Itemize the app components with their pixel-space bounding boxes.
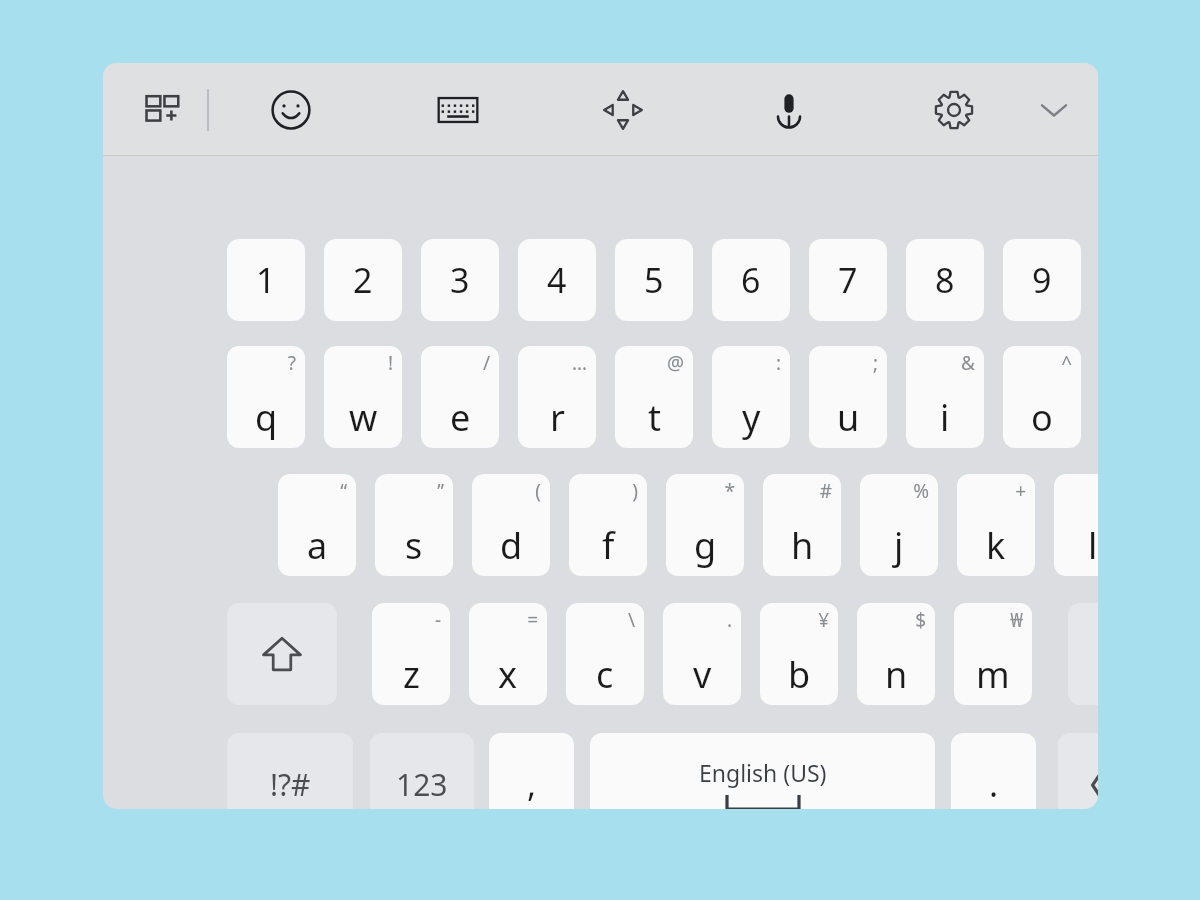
staticText: + [1015,478,1026,504]
button[interactable]: 1 [227,239,305,321]
button[interactable]: ₩ [954,603,1032,705]
button[interactable]: Settings [921,77,987,143]
staticText: % [913,478,929,504]
button[interactable]: Emoji [258,77,324,143]
staticText: h [791,521,814,570]
button[interactable]: 6 [712,239,790,321]
staticText: c [596,650,614,699]
button[interactable]: $ [857,603,935,705]
button[interactable]: 8 [906,239,984,321]
button[interactable]: 7 [809,239,887,321]
button[interactable]: ” [375,474,453,576]
button[interactable]: Shift [227,603,337,705]
staticText: ( [535,478,541,504]
button[interactable]: & [906,346,984,448]
staticText: r [550,393,565,442]
staticText: @ [666,350,684,376]
staticText: * [724,478,735,504]
staticText: \ [627,607,635,633]
button[interactable]: # [763,474,841,576]
staticText: g [694,521,717,570]
staticText: 4 [547,257,567,303]
staticText: # [819,478,832,504]
button[interactable]: ? [227,346,305,448]
button[interactable]: \ [566,603,644,705]
button[interactable]: Hide keyboard [1021,77,1087,143]
button[interactable]: * [666,474,744,576]
staticText: ₩ [1010,607,1023,633]
staticText: 5 [644,257,664,303]
staticText: - [434,607,441,633]
button[interactable]: - [1054,474,1098,576]
button[interactable]: @ [615,346,693,448]
button[interactable]: Space [590,733,935,809]
staticText: ” [437,478,444,504]
staticText: l [1088,521,1098,570]
staticText: !?# [270,764,311,805]
staticText: . [989,761,999,807]
staticText: ! [387,350,393,376]
staticText: “ [340,478,347,504]
staticText: English (US) [699,757,827,788]
staticText: 2 [353,257,373,303]
button[interactable]: !?# [227,733,353,809]
button[interactable]: ! [324,346,402,448]
button[interactable]: , [489,733,574,809]
button[interactable]: ¥ [760,603,838,705]
staticText: z [403,650,420,699]
staticText: = [527,607,538,633]
staticText: 8 [935,257,955,303]
button[interactable]: + [957,474,1035,576]
button[interactable]: ( [472,474,550,576]
button[interactable]: - [372,603,450,705]
staticText: ; [872,350,878,376]
button[interactable]: 123 [370,733,474,809]
button[interactable]: : [712,346,790,448]
staticText: ) [632,478,638,504]
staticText: 7 [838,257,858,303]
button[interactable]: / [421,346,499,448]
button[interactable]: “ [278,474,356,576]
button[interactable]: . [951,733,1036,809]
button[interactable]: 2 [324,239,402,321]
button[interactable]: Enter [1058,733,1098,809]
staticText: m [976,650,1010,699]
staticText: $ [915,607,926,633]
staticText: u [837,393,860,442]
staticText: 3 [450,257,470,303]
button[interactable]: Keyboard layout [425,77,491,143]
staticText: & [961,350,975,376]
button[interactable]: ^ [1003,346,1081,448]
staticText: 6 [741,257,761,303]
button[interactable]: Toolbar apps [131,77,197,143]
button[interactable]: 5 [615,239,693,321]
staticText: f [602,521,615,570]
button[interactable]: % [860,474,938,576]
staticText: a [307,521,328,570]
button[interactable]: ) [569,474,647,576]
button[interactable]: … [518,346,596,448]
button[interactable]: 3 [421,239,499,321]
staticText: s [405,521,423,570]
button[interactable]: Voice input [756,77,822,143]
button[interactable]: = [469,603,547,705]
button[interactable]: ; [809,346,887,448]
staticText: ^ [1061,350,1072,376]
staticText: b [788,650,811,699]
staticText: j [894,521,904,570]
staticText: v [693,650,712,699]
staticText: ? [287,350,296,376]
staticText: 123 [396,764,448,805]
staticText: 9 [1032,257,1052,303]
staticText: i [940,393,950,442]
button[interactable]: . [663,603,741,705]
button[interactable]: 4 [518,239,596,321]
staticText: x [498,650,518,699]
button[interactable]: 9 [1003,239,1081,321]
staticText: : [775,350,781,376]
staticText: t [648,393,661,442]
staticText: d [500,521,523,570]
staticText: 1 [256,257,276,303]
button[interactable]: Cursor control [590,77,656,143]
